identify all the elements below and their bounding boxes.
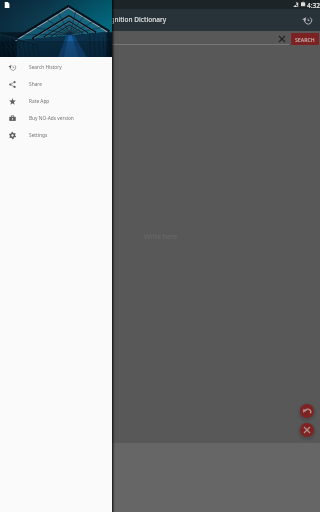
staticText: Settings [29, 132, 48, 139]
button[interactable]: Undo [300, 404, 314, 418]
button[interactable]: Search History [0, 59, 112, 76]
staticText: Search History [29, 64, 62, 71]
staticText: Share [29, 81, 42, 88]
button[interactable]: Rate App [0, 93, 112, 110]
button[interactable]: SEARCH [291, 33, 319, 45]
staticText: 4:32 [307, 1, 320, 10]
staticText: SEARCH [295, 36, 315, 43]
button[interactable]: Settings [0, 127, 112, 144]
staticText: Write here [144, 232, 178, 241]
button[interactable]: Clear text [272, 32, 290, 45]
button[interactable]: History [298, 11, 316, 29]
staticText: Buy NO-Ads version [29, 115, 74, 122]
button[interactable]: Clear canvas [300, 423, 314, 437]
button[interactable]: Buy NO-Ads version [0, 110, 112, 127]
button[interactable]: Share [0, 76, 112, 93]
staticText: Rate App [29, 98, 50, 105]
staticText: Handwriting Recognition Dictionary [55, 15, 167, 24]
